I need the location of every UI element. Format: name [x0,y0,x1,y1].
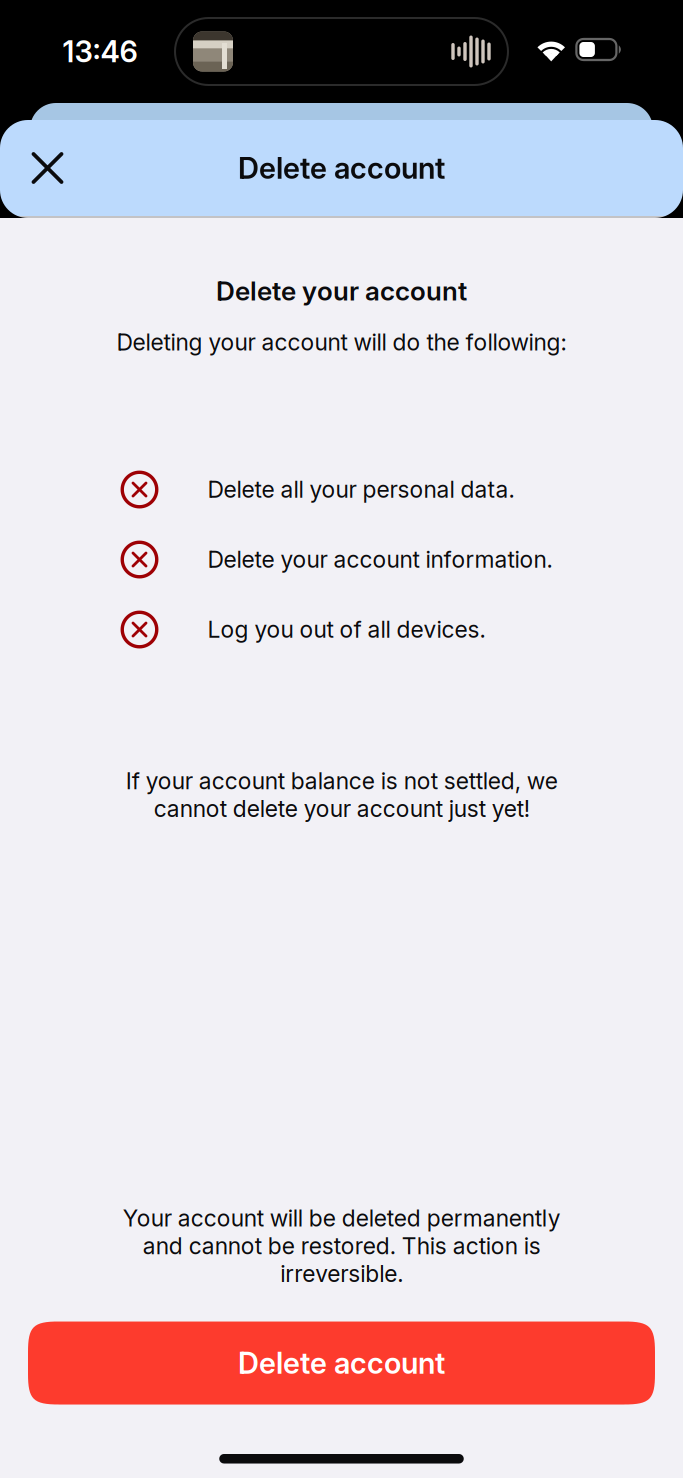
staticText: Delete all your personal data. [207,476,514,503]
staticText: Delete account [238,150,445,186]
staticText: If your account balance is not settled, … [125,767,557,822]
staticText: Your account will be deleted permanently… [122,1204,560,1287]
staticText: Deleting your account will do the follow… [116,328,566,356]
staticText: Log you out of all devices. [207,616,485,643]
button[interactable]: Delete account [28,1321,655,1404]
staticText: Delete your account information. [207,546,552,573]
staticText: Delete your account [216,275,467,307]
staticText: Delete account [238,1345,445,1381]
staticText: 13:46 [62,34,137,69]
button[interactable]: Close [0,122,85,214]
